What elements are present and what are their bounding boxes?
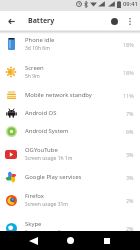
button[interactable]: Recents xyxy=(96,231,118,250)
staticText: 7% xyxy=(126,110,134,117)
staticText: Screen xyxy=(25,64,44,72)
staticText: Google Play services xyxy=(25,173,82,181)
staticText: Android OS xyxy=(25,109,57,117)
button[interactable]: Skype xyxy=(0,214,140,242)
staticText: 5h 9m xyxy=(25,73,40,80)
button[interactable]: Android System xyxy=(0,122,140,140)
button[interactable]: Android OS xyxy=(0,104,140,122)
staticText: Phone idle xyxy=(25,36,55,44)
staticText: 18% xyxy=(123,69,134,76)
staticText: 6% xyxy=(126,128,134,135)
staticText: 2% xyxy=(126,197,134,204)
button[interactable]: Mobile network standby xyxy=(0,86,140,104)
button[interactable]: Google Play services xyxy=(0,168,140,186)
staticText: 18% xyxy=(123,41,134,48)
staticText: 3% xyxy=(126,151,134,158)
button[interactable]: Firefox xyxy=(0,186,140,214)
button[interactable]: OGYouTube xyxy=(0,140,140,168)
staticText: 3% xyxy=(126,174,134,181)
button[interactable]: Phone idle xyxy=(0,30,140,58)
staticText: Screen usage 3m xyxy=(25,229,66,236)
button[interactable]: Back xyxy=(0,12,22,30)
button[interactable]: Home xyxy=(59,231,81,250)
staticText: OGYouTube xyxy=(25,146,58,154)
staticText: 11% xyxy=(123,92,134,99)
staticText: 2% xyxy=(126,225,134,232)
staticText: Android System xyxy=(25,127,69,135)
button[interactable]: Back xyxy=(22,231,44,250)
button[interactable]: Screen xyxy=(0,58,140,86)
staticText: Mobile network standby xyxy=(25,91,92,99)
staticText: Firefox xyxy=(25,192,44,200)
button[interactable]: More options xyxy=(122,12,138,30)
staticText: Screen usage 1h 1m xyxy=(25,155,73,162)
staticText: Screen usage 31m xyxy=(25,201,69,208)
staticText: Skype xyxy=(25,220,42,228)
staticText: 3d 10h 6m xyxy=(25,45,50,52)
staticText: 09:41 xyxy=(123,0,138,8)
staticText: Battery xyxy=(28,16,55,26)
button[interactable]: Help xyxy=(106,12,122,30)
